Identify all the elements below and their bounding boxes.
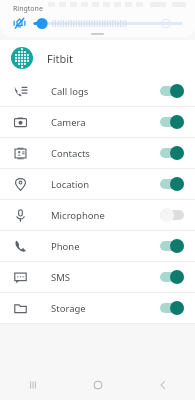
button[interactable]: Toggle on [160, 84, 184, 98]
button[interactable]: Back [130, 370, 195, 400]
button[interactable]: Microphone [0, 200, 195, 230]
button[interactable]: Toggle on [160, 239, 184, 253]
button[interactable]: SMS [0, 262, 195, 292]
staticText: Microphone [51, 209, 105, 222]
button[interactable]: Toggle on [160, 301, 184, 315]
staticText: SMS [51, 271, 71, 284]
button[interactable]: Fitbit [0, 40, 195, 76]
button[interactable] [31, 15, 187, 32]
button[interactable]: Camera [0, 107, 195, 137]
staticText: Fitbit [47, 51, 74, 66]
button[interactable]: Recent apps [0, 370, 65, 400]
button[interactable]: Toggle on [160, 270, 184, 284]
button[interactable]: Toggle on [160, 146, 184, 160]
staticText: Storage [51, 302, 86, 315]
button[interactable]: Toggle on [160, 177, 184, 191]
staticText: Contacts [51, 147, 90, 160]
staticText: Phone [51, 240, 80, 253]
button[interactable]: Location [0, 169, 195, 199]
staticText: Call logs [51, 85, 89, 98]
staticText: Ringtone [13, 4, 43, 14]
button[interactable]: Toggle on [160, 115, 184, 129]
staticText: Location [51, 178, 90, 191]
button[interactable]: Call logs [0, 76, 195, 106]
button[interactable]: Home [65, 370, 130, 400]
button[interactable]: Toggle off [160, 208, 184, 222]
button[interactable]: Mute ringtone [12, 16, 27, 31]
staticText: Camera [51, 116, 86, 129]
button[interactable]: Phone [0, 231, 195, 261]
button[interactable]: Contacts [0, 138, 195, 168]
button[interactable]: Storage [0, 293, 195, 323]
